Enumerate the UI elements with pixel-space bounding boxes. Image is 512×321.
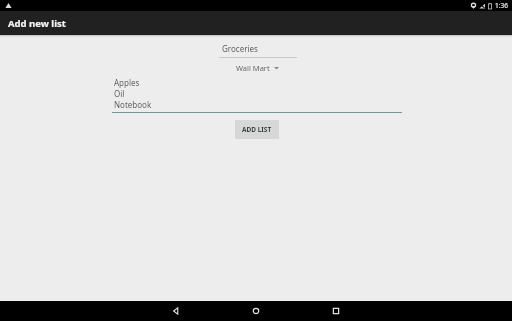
staticText: Notebook [114, 99, 152, 110]
button[interactable]: Recent apps [296, 301, 376, 321]
button[interactable]: Wall Mart [234, 62, 281, 74]
staticText: Apples [114, 77, 140, 88]
staticText: Add new list [8, 17, 66, 30]
staticText: 1:36 [495, 1, 508, 10]
button[interactable]: Apples [112, 77, 402, 113]
staticText: Groceries [222, 43, 258, 54]
staticText: Wall Mart [236, 63, 270, 73]
button[interactable]: Back [136, 301, 216, 321]
button[interactable]: Home [216, 301, 296, 321]
staticText: ADD LIST [242, 125, 272, 134]
other: Open store dropdown [274, 66, 279, 70]
button[interactable]: Groceries [219, 43, 297, 58]
staticText: Oil [114, 88, 125, 99]
button[interactable]: ADD LIST [235, 120, 279, 139]
